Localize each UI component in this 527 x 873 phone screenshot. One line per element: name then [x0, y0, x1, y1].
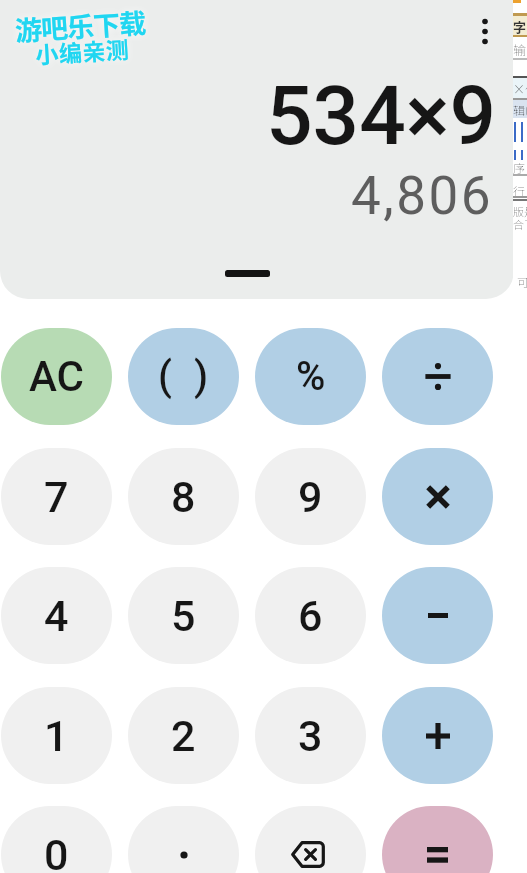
button[interactable]: %: [255, 328, 366, 425]
button[interactable]: [255, 806, 366, 873]
button[interactable]: 7: [1, 448, 112, 545]
staticText: %: [296, 353, 326, 400]
staticText: ×仁: [513, 80, 527, 97]
staticText: 游吧乐下载: [14, 2, 146, 49]
staticText: 小编亲测: [34, 31, 130, 70]
button[interactable]: [382, 806, 493, 873]
staticText: ( ): [158, 353, 215, 400]
staticText: 2: [171, 711, 196, 761]
button[interactable]: [128, 806, 239, 873]
staticText: 534×9: [266, 68, 497, 164]
staticText: 6: [298, 591, 323, 641]
button[interactable]: 3: [255, 687, 366, 784]
button[interactable]: 4: [1, 567, 112, 664]
staticText: 7: [44, 472, 69, 522]
staticText: 可: [517, 273, 527, 290]
staticText: 辑(: [513, 101, 527, 118]
button[interactable]: AC: [1, 328, 112, 425]
button[interactable]: 1: [1, 687, 112, 784]
button[interactable]: 0: [1, 806, 112, 873]
staticText: 序: [513, 159, 526, 176]
staticText: 版是: [513, 203, 527, 219]
button[interactable]: 8: [128, 448, 239, 545]
button[interactable]: [382, 687, 493, 784]
staticText: 4: [44, 591, 69, 641]
staticText: 8: [171, 472, 196, 522]
button[interactable]: 9: [255, 448, 366, 545]
staticText: 字|: [513, 17, 527, 36]
button[interactable]: 2: [128, 687, 239, 784]
button[interactable]: [382, 328, 493, 425]
staticText: AC: [29, 352, 84, 401]
staticText: 5: [171, 591, 196, 641]
button[interactable]: [472, 10, 498, 54]
button[interactable]: [382, 448, 493, 545]
staticText: 输: [513, 40, 527, 59]
staticText: 行: [513, 182, 526, 199]
staticText: 0: [44, 830, 69, 873]
staticText: 合了: [513, 216, 527, 232]
button[interactable]: 6: [255, 567, 366, 664]
staticText: 4,806: [351, 165, 494, 227]
button[interactable]: ( ): [128, 328, 239, 425]
staticText: 1: [44, 711, 69, 761]
button[interactable]: 5: [128, 567, 239, 664]
staticText: 3: [298, 711, 323, 761]
staticText: 9: [298, 472, 323, 522]
button[interactable]: [382, 567, 493, 664]
